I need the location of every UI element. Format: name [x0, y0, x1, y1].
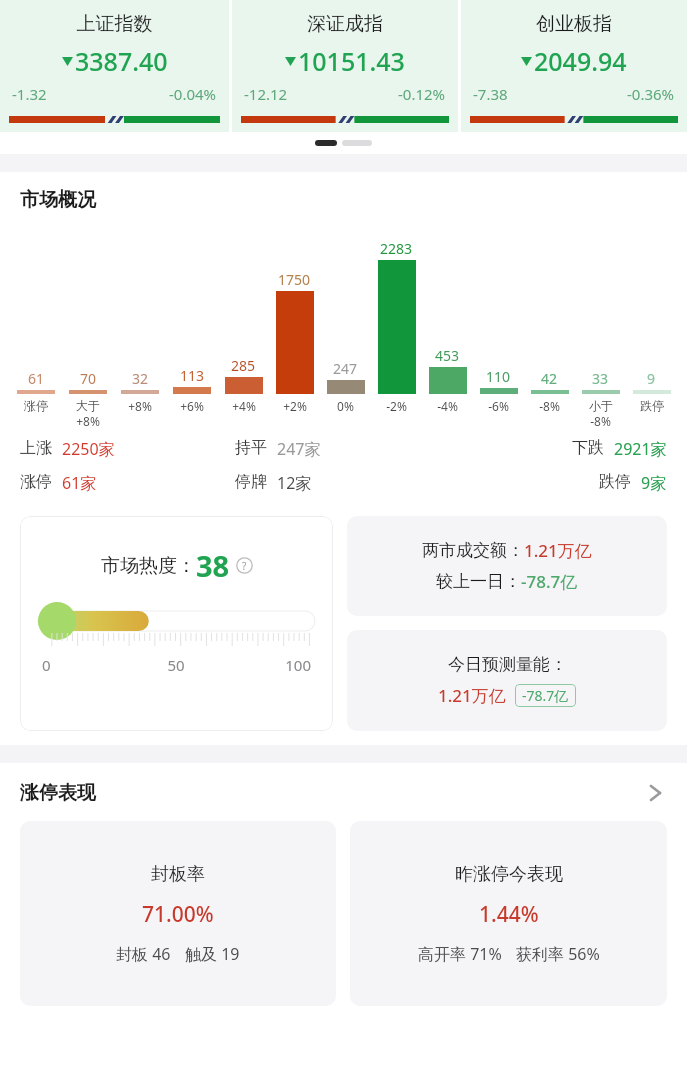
staticText: 12家 [277, 472, 312, 494]
staticText: 上证指数 [0, 12, 229, 36]
staticText: 9 [647, 369, 656, 388]
staticText: 10151.43 [298, 44, 405, 78]
staticText: -12.12 [244, 84, 288, 104]
staticText: 触及 19 [185, 943, 240, 965]
staticText: -0.36% [627, 84, 675, 104]
staticText: -78.7亿 [522, 686, 569, 705]
staticText: +8% [76, 413, 100, 429]
staticText: +4% [232, 398, 256, 414]
staticText: 285 [231, 356, 256, 375]
staticText: 深证成指 [232, 12, 458, 36]
button[interactable]: 创业板指 [461, 0, 687, 132]
staticText: 跌停 [599, 472, 631, 492]
staticText: 今日预测量能： [448, 654, 567, 675]
staticText: 0% [337, 398, 354, 414]
staticText: 较上一日： [436, 571, 521, 592]
button[interactable]: 封板率 [20, 821, 336, 1006]
staticText: -8% [590, 413, 611, 429]
staticText: -0.12% [398, 84, 446, 104]
staticText: 1750 [278, 270, 311, 289]
button[interactable]: 今日预测量能： [347, 630, 667, 731]
staticText: ? [242, 559, 247, 573]
staticText: 70 [80, 369, 97, 388]
staticText: 两市成交额： [422, 540, 524, 561]
staticText: 大于 [76, 398, 100, 413]
staticText: 32 [132, 369, 149, 388]
button[interactable]: 深证成指 [232, 0, 458, 132]
staticText: 昨涨停今表现 [455, 863, 563, 886]
button[interactable]: 市场热度： [20, 516, 333, 731]
staticText: 1.21万亿 [524, 539, 592, 562]
staticText: 1.21万亿 [438, 684, 506, 707]
staticText: -2% [386, 398, 407, 414]
staticText: 9家 [641, 472, 667, 494]
staticText: 2283 [380, 239, 413, 258]
staticText: 上涨 [20, 438, 52, 458]
button[interactable]: 说明 [236, 557, 253, 574]
staticText: 封板率 [151, 863, 205, 886]
staticText: -6% [488, 398, 509, 414]
staticText: 涨停 [20, 472, 52, 492]
staticText: 创业板指 [461, 12, 687, 36]
other: 更多 [643, 781, 667, 805]
staticText: 113 [180, 366, 205, 385]
staticText: 61 [28, 369, 45, 388]
staticText: 小于 [589, 398, 613, 413]
staticText: 市场热度： [101, 554, 196, 578]
staticText: 0 [42, 655, 131, 675]
staticText: 高开率 71% [418, 943, 502, 965]
staticText: 71.00% [142, 900, 214, 929]
staticText: -1.32 [12, 84, 47, 104]
staticText: 247家 [277, 438, 321, 460]
staticText: 33 [592, 369, 609, 388]
staticText: -4% [437, 398, 458, 414]
staticText: 247 [333, 359, 358, 378]
staticText: -78.7亿 [521, 570, 578, 593]
staticText: 停牌 [235, 472, 267, 492]
staticText: -8% [539, 398, 560, 414]
button[interactable]: 上证指数 [0, 0, 229, 132]
staticText: 110 [486, 367, 511, 386]
staticText: 2049.94 [534, 44, 627, 78]
staticText: 涨停表现 [20, 781, 96, 805]
staticText: 持平 [235, 438, 267, 458]
staticText: 3387.40 [75, 44, 168, 78]
staticText: +8% [128, 398, 152, 414]
staticText: 453 [435, 346, 460, 365]
staticText: 50 [131, 655, 221, 675]
staticText: 2921家 [614, 438, 667, 460]
staticText: 100 [221, 655, 311, 675]
staticText: 跌停 [640, 398, 664, 413]
staticText: 2250家 [62, 438, 115, 460]
staticText: -0.04% [169, 84, 217, 104]
staticText: 封板 46 [116, 943, 171, 965]
button[interactable]: 涨停表现 [20, 781, 667, 805]
staticText: +6% [180, 398, 204, 414]
staticText: 市场概况 [20, 188, 96, 212]
staticText: 38 [196, 546, 230, 585]
staticText: +2% [283, 398, 307, 414]
staticText: 涨停 [24, 398, 48, 413]
staticText: 61家 [62, 472, 97, 494]
staticText: 获利率 56% [516, 943, 600, 965]
staticText: 下跌 [572, 438, 604, 458]
button[interactable]: 昨涨停今表现 [350, 821, 667, 1006]
staticText: 42 [541, 369, 558, 388]
staticText: -7.38 [473, 84, 508, 104]
button[interactable]: 两市成交额： [347, 516, 667, 616]
staticText: 1.44% [479, 900, 539, 929]
